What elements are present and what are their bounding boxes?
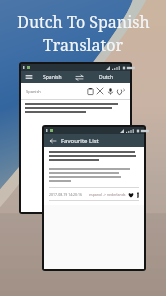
button[interactable]: Back bbox=[48, 136, 57, 145]
button[interactable]: Paste bbox=[85, 86, 95, 96]
button[interactable]: Spanish bbox=[33, 71, 72, 83]
button[interactable]: Favourite bbox=[126, 190, 135, 199]
button[interactable]: Delete bbox=[137, 190, 139, 199]
button[interactable]: Dutch bbox=[86, 71, 126, 83]
button[interactable]: Swap languages bbox=[72, 71, 86, 83]
staticText: espanol -> nederlands bbox=[89, 192, 126, 197]
staticText: Dutch bbox=[99, 74, 114, 81]
staticText: Spanish bbox=[26, 89, 41, 94]
staticText: Translator bbox=[43, 34, 123, 56]
staticText: Dutch To Spanish bbox=[17, 11, 150, 33]
button[interactable]: Listen bbox=[115, 86, 125, 96]
staticText: Favourite List bbox=[61, 137, 99, 145]
staticText: 2017-08-19 14:20:16 bbox=[49, 192, 83, 197]
button[interactable]: Speak bbox=[105, 86, 115, 96]
button[interactable]: Menu bbox=[25, 73, 33, 81]
button[interactable]: Clear bbox=[95, 86, 105, 96]
staticText: Spanish bbox=[43, 74, 62, 81]
